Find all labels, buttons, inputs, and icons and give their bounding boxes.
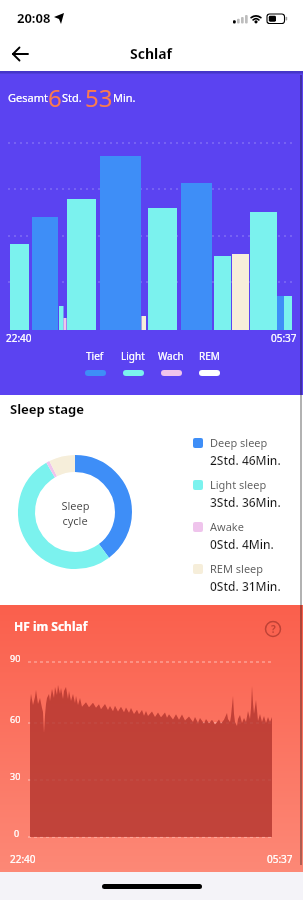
button[interactable] bbox=[6, 40, 34, 68]
button[interactable]: ? bbox=[263, 619, 283, 639]
staticText: 90 bbox=[10, 652, 21, 664]
staticText: 22:40 bbox=[6, 331, 32, 345]
staticText: 6 bbox=[48, 81, 62, 114]
staticText: REM bbox=[199, 349, 220, 363]
staticText: HF im Schlaf bbox=[14, 618, 88, 634]
staticText: Wach bbox=[158, 349, 184, 363]
staticText: Sleep bbox=[61, 498, 90, 513]
staticText: 05:37 bbox=[271, 331, 297, 345]
staticText: Tief bbox=[86, 349, 104, 363]
staticText: REM sleep bbox=[210, 561, 264, 576]
staticText: 30 bbox=[10, 770, 21, 782]
staticText: Light bbox=[121, 349, 145, 363]
staticText: 2Std. 46Min. bbox=[210, 452, 281, 468]
staticText: 0 bbox=[14, 827, 20, 839]
staticText: 22:40 bbox=[10, 852, 36, 866]
staticText: cycle bbox=[62, 513, 88, 528]
staticText: Min. bbox=[113, 90, 136, 105]
staticText: Awake bbox=[210, 519, 244, 534]
staticText: 0Std. 4Min. bbox=[210, 536, 274, 552]
staticText: Deep sleep bbox=[210, 435, 268, 450]
staticText: 3Std. 36Min. bbox=[210, 494, 281, 510]
staticText: 20:08 bbox=[17, 9, 51, 27]
staticText: Std. bbox=[62, 90, 85, 105]
staticText: Light sleep bbox=[210, 477, 267, 492]
staticText: 53 bbox=[85, 81, 113, 114]
staticText: Gesamt bbox=[8, 90, 48, 105]
staticText: ? bbox=[271, 622, 276, 636]
staticText: Sleep stage bbox=[10, 400, 85, 418]
staticText: 0Std. 31Min. bbox=[210, 578, 281, 594]
staticText: Schlaf bbox=[130, 44, 173, 63]
staticText: 60 bbox=[10, 713, 21, 725]
staticText: 05:37 bbox=[267, 852, 293, 866]
